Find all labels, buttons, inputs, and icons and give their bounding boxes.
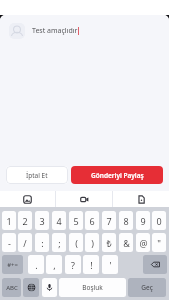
staticText: Gönderiyi Paylaş [91,171,144,180]
staticText: 0 [156,215,162,227]
button[interactable]: 6 [85,211,99,230]
button[interactable]: 2 [18,211,32,230]
staticText: ₺ [106,237,112,249]
button[interactable]: 9 [136,211,150,230]
button[interactable]: 1 [2,211,16,230]
staticText: 3 [39,215,45,227]
button[interactable]: & [119,233,133,252]
staticText: . [35,259,38,271]
button[interactable]: Add photo [0,191,55,207]
button[interactable]: ? [65,255,81,274]
button[interactable]: Geç [128,278,166,297]
staticText: ; [58,237,61,249]
staticText: Boşluk [82,283,103,292]
staticText: ABC [6,284,18,292]
button[interactable]: " [152,233,166,252]
button[interactable]: 5 [69,211,83,230]
staticText: 9 [140,215,146,227]
button[interactable]: 3 [35,211,49,230]
button[interactable]: ABC [2,278,21,297]
staticText: / [23,237,27,249]
button[interactable]: ( [69,233,83,252]
staticText: : [41,237,44,249]
button[interactable]: ! [83,255,99,274]
staticText: Test amaçlıdır [32,26,78,36]
button[interactable]: . [28,255,44,274]
staticText: ' [109,259,112,271]
button[interactable]: ; [52,233,66,252]
staticText: , [53,259,56,271]
staticText: & [123,237,130,249]
button[interactable]: ₺ [102,233,116,252]
staticText: ( [75,237,78,249]
staticText: İptal Et [26,171,48,180]
staticText: - [8,237,11,249]
staticText: 1 [6,215,12,227]
button[interactable]: Boşluk [59,278,126,297]
button[interactable]: 8 [119,211,133,230]
staticText: 4 [56,215,62,227]
button[interactable]: @ [136,233,150,252]
staticText: @ [139,237,148,249]
button[interactable]: , [46,255,62,274]
button[interactable]: Add document [113,191,169,207]
button[interactable]: : [35,233,49,252]
button[interactable]: İptal Et [6,166,68,184]
button[interactable]: Dictate [42,278,57,297]
staticText: 5 [73,215,79,227]
button[interactable]: 4 [52,211,66,230]
staticText: 2 [22,215,28,227]
button[interactable]: 7 [102,211,116,230]
staticText: #+= [7,261,18,269]
staticText: ! [90,259,93,271]
staticText: ) [91,237,94,249]
button[interactable]: Gönderiyi Paylaş [71,166,163,184]
button[interactable]: ' [102,255,118,274]
button[interactable]: Add video [56,191,112,207]
button[interactable]: ) [85,233,99,252]
button[interactable]: Change keyboard [23,278,39,297]
staticText: ? [71,259,75,271]
button[interactable]: / [18,233,32,252]
staticText: 8 [123,215,129,227]
staticText: 7 [106,215,112,227]
staticText: Geç [141,283,153,292]
button[interactable]: Backspace [143,255,167,274]
staticText: " [157,237,161,249]
button[interactable]: - [2,233,16,252]
staticText: 6 [89,215,95,227]
button[interactable]: 0 [152,211,166,230]
button[interactable]: #+= [2,255,23,274]
